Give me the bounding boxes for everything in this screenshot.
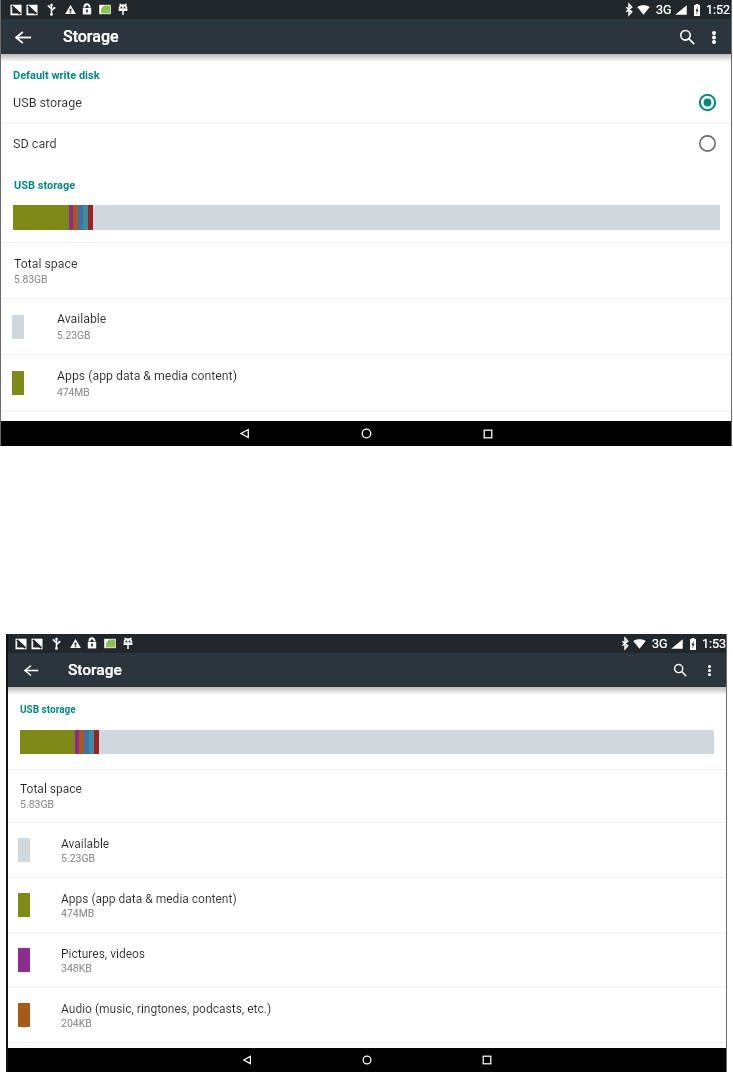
staticText: USB storage xyxy=(20,704,76,716)
staticText: 5.23GB xyxy=(61,852,96,864)
staticText: Storage xyxy=(63,27,119,46)
staticText: Pictures, videos xyxy=(61,947,146,961)
staticText: 3G xyxy=(656,2,672,17)
button[interactable]: USB storage xyxy=(1,82,732,123)
button[interactable]: SD card xyxy=(1,124,732,162)
button[interactable]: Search xyxy=(671,21,702,52)
staticText: Default write disk xyxy=(13,69,100,82)
button[interactable]: More options xyxy=(699,660,720,681)
staticText: Apps (app data & media content) xyxy=(57,369,237,383)
staticText: Storage xyxy=(68,661,122,679)
button[interactable]: More options xyxy=(702,25,726,49)
button[interactable]: Back xyxy=(17,656,45,684)
button[interactable]: Back xyxy=(7,21,39,53)
staticText: USB storage xyxy=(13,95,82,110)
button[interactable]: Audio (music, ringtones, podcasts, etc.) xyxy=(6,988,727,1042)
button[interactable]: Apps (app data & media content) xyxy=(1,355,732,411)
staticText: 5.83GB xyxy=(14,273,48,285)
staticText: Total space xyxy=(20,782,82,796)
staticText: 204KB xyxy=(61,1017,92,1029)
button[interactable]: Available xyxy=(1,299,732,354)
staticText: USB storage xyxy=(14,179,76,192)
staticText: 348KB xyxy=(61,962,92,974)
staticText: 5.83GB xyxy=(20,798,55,810)
staticText: 3G xyxy=(652,636,668,651)
button[interactable]: Total space xyxy=(1,243,732,298)
button[interactable]: Pictures, videos xyxy=(6,933,727,987)
button[interactable]: Apps (app data & media content) xyxy=(6,878,727,932)
button[interactable]: Search xyxy=(661,653,699,687)
button[interactable]: Available xyxy=(6,823,727,877)
button[interactable]: Home xyxy=(305,421,427,446)
staticText: 474MB xyxy=(57,386,90,398)
staticText: Available xyxy=(57,312,107,326)
staticText: 1:52 xyxy=(706,2,731,17)
staticText: 5.23GB xyxy=(57,329,91,341)
staticText: Total space xyxy=(14,257,78,271)
button[interactable]: Recents xyxy=(427,1048,547,1072)
staticText: 1:53 xyxy=(702,636,727,651)
staticText: Apps (app data & media content) xyxy=(61,892,237,906)
staticText: Available xyxy=(61,837,110,851)
button[interactable]: Total space xyxy=(6,770,727,822)
staticText: SD card xyxy=(13,136,57,151)
button[interactable]: Recents xyxy=(427,421,549,446)
button[interactable]: Back xyxy=(187,1048,307,1072)
staticText: 474MB xyxy=(61,907,95,919)
button[interactable]: Back xyxy=(183,421,305,446)
staticText: Audio (music, ringtones, podcasts, etc.) xyxy=(61,1002,272,1016)
button[interactable]: Home xyxy=(307,1048,427,1072)
